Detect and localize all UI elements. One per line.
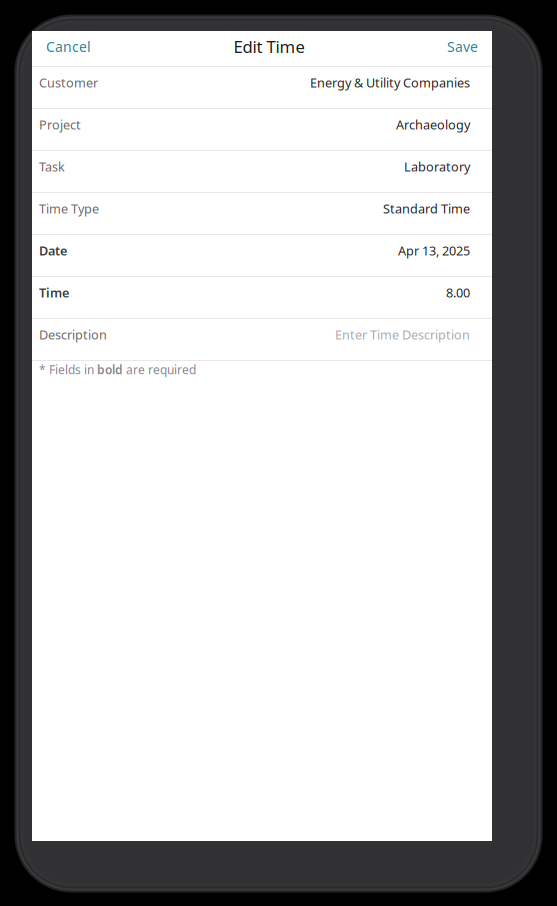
staticText: Description	[39, 326, 107, 343]
staticText: Task	[39, 158, 65, 175]
staticText: Time	[39, 284, 69, 301]
staticText: Customer	[39, 74, 98, 91]
staticText: Save	[447, 37, 478, 56]
staticText: Project	[39, 116, 81, 133]
staticText: Date	[39, 242, 67, 259]
staticText: bold	[97, 361, 123, 378]
staticText: * Fields in	[39, 361, 97, 378]
staticText: Archaeology	[396, 116, 470, 133]
staticText: are required	[123, 361, 196, 378]
staticText: Cancel	[46, 37, 91, 56]
button[interactable]: Time	[32, 277, 492, 319]
staticText: Standard Time	[383, 200, 470, 217]
staticText: 8.00	[446, 284, 470, 301]
staticText: Edit Time	[233, 35, 304, 58]
button[interactable]: Date	[32, 235, 492, 277]
button[interactable]: Customer	[32, 67, 492, 109]
staticText: Laboratory	[404, 158, 470, 175]
staticText: Energy & Utility Companies	[310, 74, 470, 91]
button[interactable]: Save	[433, 29, 492, 64]
staticText: Enter Time Description	[335, 326, 470, 343]
button[interactable]: Cancel	[32, 29, 105, 64]
staticText: Apr 13, 2025	[398, 242, 470, 259]
button[interactable]: Description	[32, 319, 492, 361]
button[interactable]: Task	[32, 151, 492, 193]
staticText: Time Type	[39, 200, 99, 217]
button[interactable]: Project	[32, 109, 492, 151]
button[interactable]: Time Type	[32, 193, 492, 235]
